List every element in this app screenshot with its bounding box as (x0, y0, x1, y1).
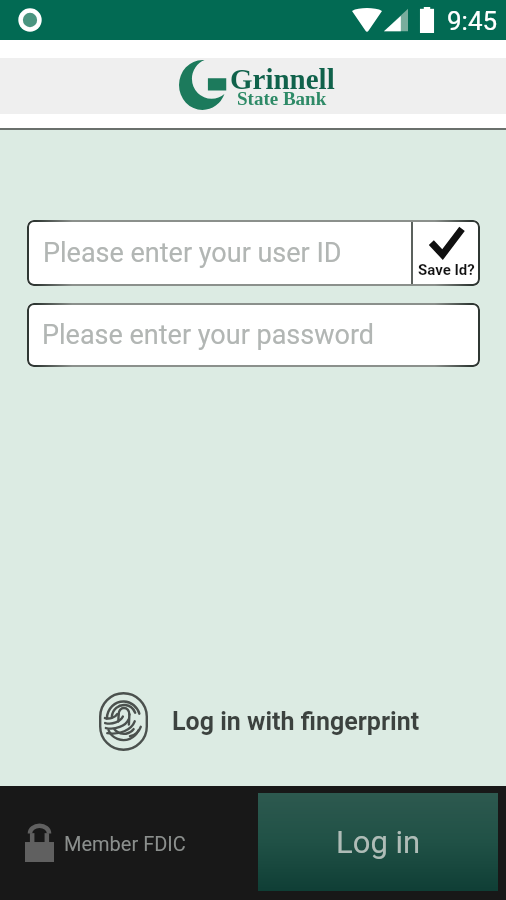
button[interactable]: Log in with fingerprint (0, 691, 506, 751)
staticText: Log in with fingerprint (172, 707, 420, 736)
staticText: 9:45 (447, 6, 498, 36)
button[interactable]: Please enter your password (27, 303, 480, 367)
other: Battery (419, 7, 435, 33)
staticText: Log in (336, 824, 421, 860)
other: Wifi (352, 8, 382, 32)
button[interactable]: Log in (258, 793, 498, 891)
button[interactable]: Member FDIC (25, 825, 186, 862)
button[interactable]: Please enter your user ID (27, 220, 480, 286)
staticText: Member FDIC (64, 832, 186, 855)
staticText: Save Id? (418, 261, 475, 279)
button[interactable]: Save Id? (413, 220, 480, 286)
staticText: Please enter your user ID (43, 237, 342, 269)
other: Signal (384, 8, 408, 32)
staticText: State Bank (237, 88, 327, 109)
staticText: Please enter your password (42, 319, 375, 351)
staticText: Grinnell (230, 63, 335, 95)
other: Status icon (17, 7, 43, 33)
